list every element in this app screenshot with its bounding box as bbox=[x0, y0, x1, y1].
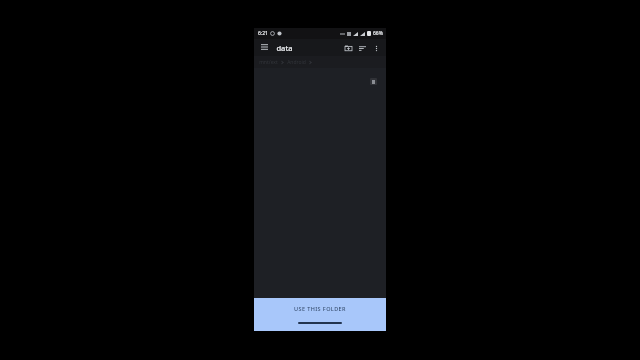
button[interactable]: More options bbox=[369, 41, 383, 55]
button[interactable]: mnt/ext bbox=[259, 59, 278, 66]
button[interactable]: Create new folder bbox=[341, 41, 355, 55]
button[interactable]: USE THIS FOLDER bbox=[258, 302, 382, 315]
button[interactable]: Android bbox=[287, 59, 306, 66]
staticText: Android bbox=[287, 59, 306, 66]
button[interactable]: Open navigation drawer bbox=[258, 41, 271, 54]
button[interactable]: Sort bbox=[355, 41, 369, 55]
staticText: 6:21 bbox=[258, 30, 268, 37]
staticText: mnt/ext bbox=[259, 59, 278, 66]
other: Scroll indicator bbox=[370, 78, 377, 85]
staticText: data bbox=[276, 43, 293, 53]
staticText: USE THIS FOLDER bbox=[294, 305, 346, 312]
staticText: 66% bbox=[373, 30, 383, 37]
